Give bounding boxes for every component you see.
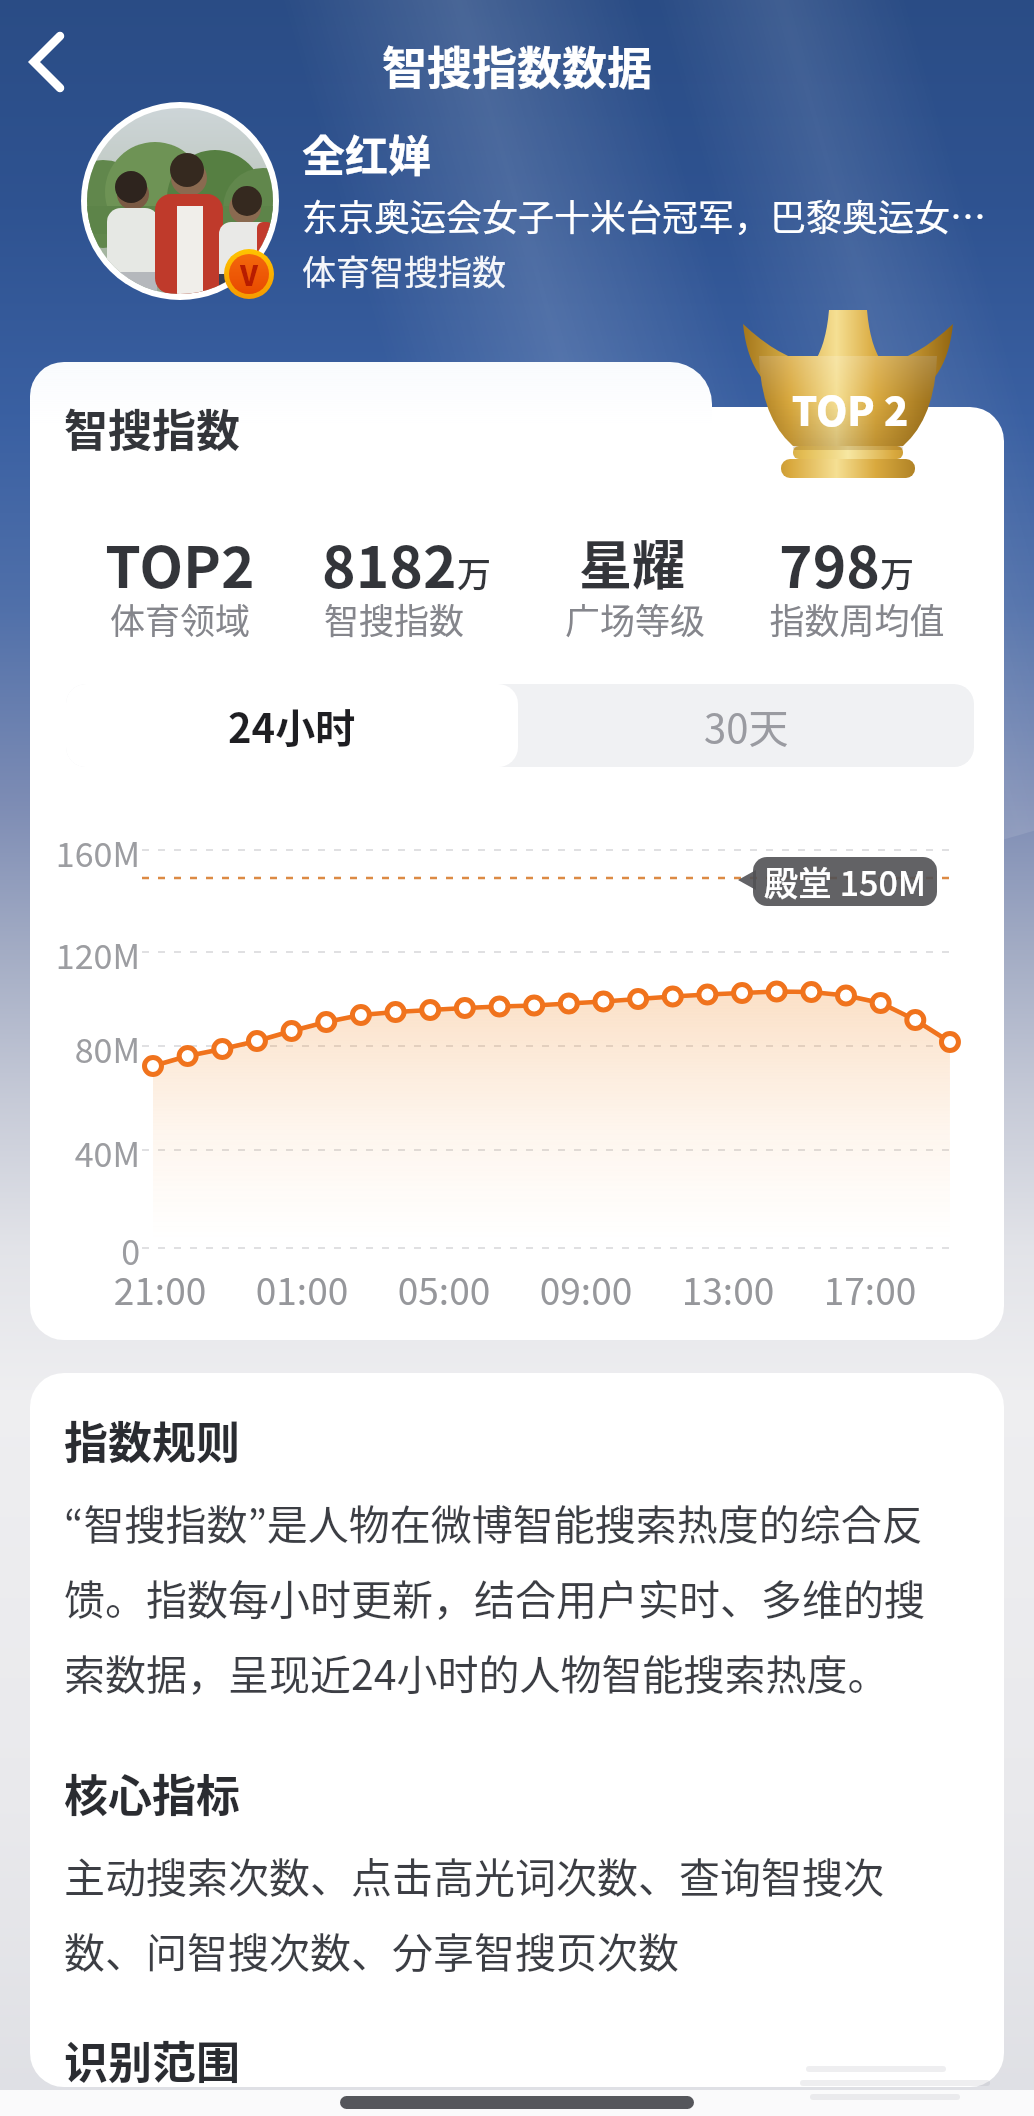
staticText: 体育领域: [70, 593, 290, 644]
staticText: 指数周均值: [747, 593, 967, 644]
staticText: 智搜指数数据: [0, 33, 1034, 98]
staticText: 东京奥运会女子十米台冠军，巴黎奥运女…: [302, 189, 987, 241]
staticText: 数、问智搜次数、分享智搜页次数: [64, 1920, 679, 1979]
staticText: 05:00: [384, 1262, 504, 1316]
staticText: 主动搜索次数、点击高光词次数、查询智搜次: [64, 1845, 884, 1904]
staticText: 8182: [322, 522, 457, 605]
staticText: 识别范围: [64, 2028, 240, 2092]
staticText: 40M: [30, 1128, 140, 1177]
staticText: 智搜指数: [64, 396, 240, 460]
staticText: 指数规则: [64, 1408, 240, 1472]
staticText: 索数据，呈现近24小时的人物智能搜索热度。: [64, 1642, 889, 1701]
staticText: 120M: [30, 930, 140, 979]
staticText: “智搜指数”是人物在微博智能搜索热度的综合反: [64, 1492, 923, 1551]
staticText: 智搜指数: [284, 593, 504, 644]
staticText: TOP 2: [775, 380, 925, 438]
button[interactable]: 30天: [518, 684, 974, 767]
button[interactable]: [16, 30, 80, 94]
staticText: 体育智搜指数: [302, 246, 506, 295]
staticText: V: [240, 254, 259, 294]
staticText: 80M: [30, 1024, 140, 1073]
staticText: 殿堂 150M: [764, 857, 927, 906]
staticText: 0: [30, 1226, 140, 1275]
staticText: 万: [457, 548, 491, 597]
staticText: 馈。指数每小时更新，结合用户实时、多维的搜: [64, 1567, 925, 1626]
staticText: 01:00: [242, 1262, 362, 1316]
staticText: 21:00: [100, 1262, 220, 1316]
staticText: 全红婵: [302, 122, 431, 184]
staticText: 万: [880, 548, 914, 597]
button[interactable]: 24小时: [66, 684, 518, 767]
staticText: 17:00: [810, 1262, 930, 1316]
staticText: 30天: [704, 697, 789, 755]
button[interactable]: [87, 108, 273, 294]
staticText: 160M: [30, 828, 140, 877]
staticText: 核心指标: [64, 1761, 240, 1825]
staticText: TOP2: [70, 522, 290, 605]
staticText: 09:00: [526, 1262, 646, 1316]
staticText: 广场等级: [555, 593, 715, 644]
staticText: 798: [779, 522, 880, 605]
staticText: 星耀: [552, 524, 712, 601]
staticText: 24小时: [228, 697, 356, 755]
staticText: 13:00: [668, 1262, 788, 1316]
